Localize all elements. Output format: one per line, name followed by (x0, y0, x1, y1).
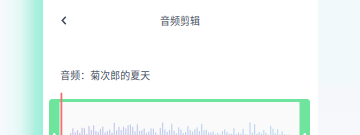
button[interactable]: Back (52, 8, 76, 32)
staticText: 音频剪辑 (160, 13, 200, 28)
staticText: 音频：菊次郎的夏天 (60, 68, 150, 82)
